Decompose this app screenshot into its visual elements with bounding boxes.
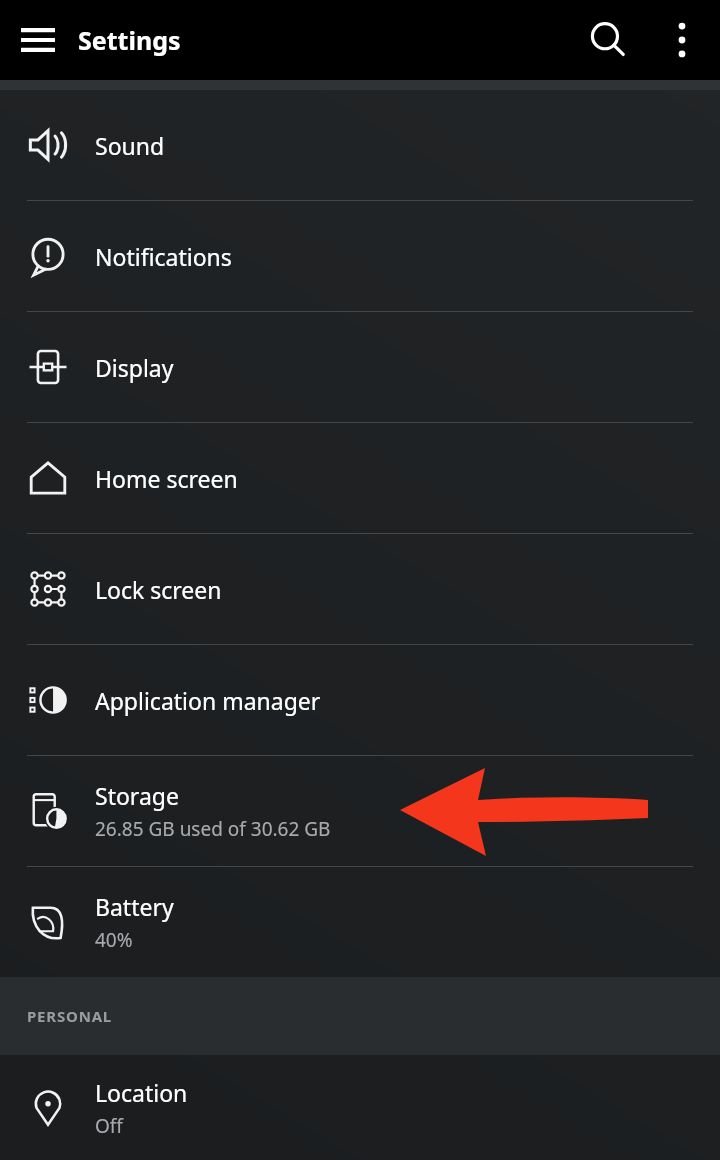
button[interactable]: Location <box>0 1055 720 1160</box>
button[interactable]: Sound <box>0 90 720 200</box>
button[interactable]: Battery <box>0 867 720 977</box>
button[interactable]: Lock screen <box>0 534 720 644</box>
button[interactable]: Application manager <box>0 645 720 755</box>
button[interactable]: Home screen <box>0 423 720 533</box>
staticText: 40% <box>95 927 133 953</box>
staticText: Display <box>95 352 174 383</box>
button[interactable]: Search <box>578 10 638 70</box>
staticText: Notifications <box>95 241 232 272</box>
button[interactable]: More options <box>652 10 712 70</box>
button[interactable]: Display <box>0 312 720 422</box>
staticText: Storage <box>95 780 179 811</box>
staticText: 26.85 GB used of 30.62 GB <box>95 816 331 842</box>
button[interactable]: Open navigation drawer <box>8 10 68 70</box>
staticText: Location <box>95 1077 188 1108</box>
staticText: Lock screen <box>95 574 222 605</box>
button[interactable]: Notifications <box>0 201 720 311</box>
staticText: PERSONAL <box>27 1006 113 1026</box>
button[interactable]: Storage <box>0 756 720 866</box>
staticText: Off <box>95 1113 123 1139</box>
staticText: Battery <box>95 891 174 922</box>
staticText: Home screen <box>95 463 238 494</box>
staticText: Settings <box>78 23 181 57</box>
staticText: Sound <box>95 130 165 161</box>
staticText: Application manager <box>95 685 321 716</box>
